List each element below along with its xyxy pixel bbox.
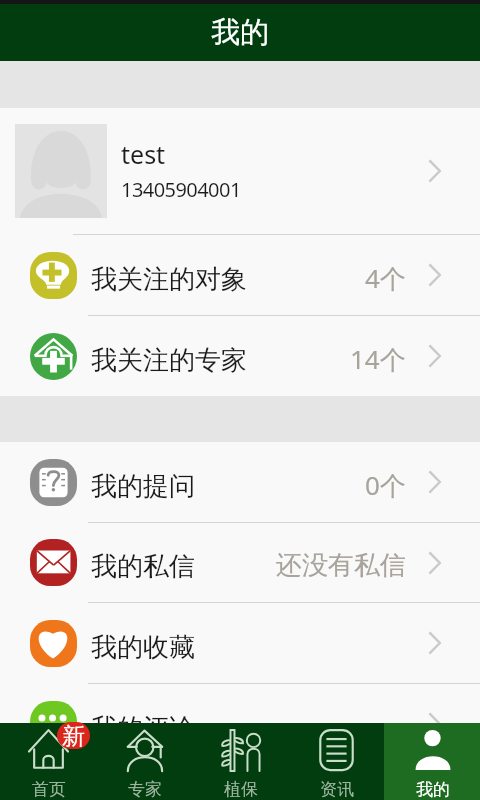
staticText: 我的提问 [91,470,195,503]
staticText: 还没有私信 [276,549,406,582]
button[interactable]: Experts [96,723,192,800]
button[interactable]: 我关注的专家 [0,316,480,396]
button[interactable]: test [0,108,480,234]
button[interactable]: Plant protection [192,723,288,800]
button[interactable]: 我的私信 [0,523,480,602]
staticText: 我的 [416,779,450,800]
button[interactable]: 我的评论 [0,684,480,764]
staticText: 专家 [128,779,162,800]
button[interactable]: 我关注的对象 [0,235,480,315]
staticText: 首页 [32,779,66,800]
staticText: 14个 [350,341,406,377]
staticText: 植保 [224,779,258,800]
staticText: 我的评论 [91,712,195,745]
staticText: 我的 [211,14,269,51]
staticText: 13405904001 [121,176,241,203]
button[interactable]: 我的提问 [0,442,480,522]
staticText: 0个 [365,467,406,503]
staticText: 新 [62,722,85,749]
button[interactable]: Mine [384,723,480,800]
button[interactable]: News [288,723,384,800]
staticText: 我关注的对象 [91,263,247,296]
staticText: 4个 [365,260,406,296]
staticText: 我关注的专家 [91,344,247,377]
staticText: 我的私信 [91,550,195,583]
staticText: 资讯 [320,779,354,800]
button[interactable]: Home [0,723,96,800]
staticText: 我的收藏 [91,631,195,664]
button[interactable]: 我的收藏 [0,603,480,683]
staticText: test [121,137,166,171]
